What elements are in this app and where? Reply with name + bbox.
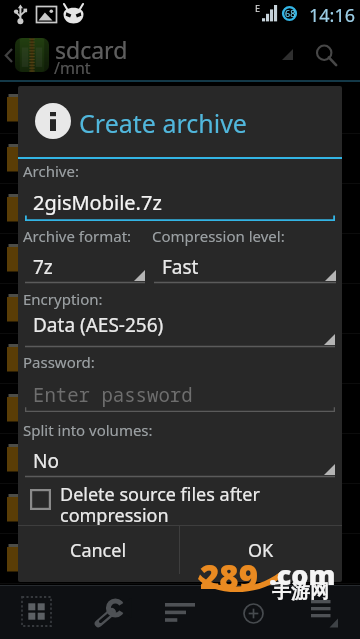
staticText: Podcasts <box>44 548 111 570</box>
button[interactable]: Tools <box>86 595 132 633</box>
staticText: Books <box>44 198 90 220</box>
staticText: Movies <box>44 448 97 470</box>
button[interactable]: Menu <box>300 594 348 634</box>
button[interactable]: Movies <box>0 434 360 483</box>
button[interactable]: More options <box>274 40 300 68</box>
button[interactable]: No <box>25 448 335 478</box>
button[interactable]: Podcasts <box>0 534 360 583</box>
staticText: Enter password <box>33 382 193 408</box>
staticText: OK <box>248 538 274 563</box>
staticText: Fast <box>162 254 199 280</box>
button[interactable]: Sounds <box>0 284 360 333</box>
button[interactable]: Books <box>0 184 360 233</box>
staticText: .com <box>269 556 336 593</box>
button[interactable]: View mode <box>16 591 56 631</box>
button[interactable]: Sort <box>152 595 208 631</box>
button[interactable]: Music <box>0 484 360 533</box>
button[interactable]: OK <box>180 526 342 574</box>
button[interactable]: Alarms <box>0 134 360 183</box>
staticText: Android <box>44 98 104 120</box>
staticText: /mnt <box>54 57 91 79</box>
staticText: Compression level: <box>152 226 285 246</box>
button[interactable]: Cancel <box>18 526 179 574</box>
staticText: 7z <box>33 254 53 280</box>
button[interactable]: Search <box>306 38 346 72</box>
button[interactable]: DCIM <box>0 334 360 383</box>
button[interactable]: Add <box>232 594 274 632</box>
button[interactable]: Delete source files after compression <box>25 482 335 526</box>
staticText: DCIM <box>44 348 86 370</box>
staticText: 68 <box>285 7 296 19</box>
staticText: Music <box>44 498 88 520</box>
staticText: Create archive <box>79 106 247 140</box>
staticText: 2gisMobile.7z <box>33 189 162 216</box>
staticText: 289 <box>200 554 259 599</box>
staticText: 手游网 <box>272 580 329 604</box>
staticText: Data (AES-256) <box>33 312 164 338</box>
button[interactable]: Pictures <box>0 234 360 283</box>
staticText: Encryption: <box>23 289 103 309</box>
button[interactable]: Fast <box>154 254 336 284</box>
button[interactable]: Download <box>0 384 360 433</box>
staticText: Archive: <box>23 161 79 181</box>
staticText: Split into volumes: <box>23 420 153 440</box>
button[interactable]: Navigate up <box>0 38 16 72</box>
button[interactable]: Enter password <box>25 381 335 412</box>
staticText: sdcard <box>55 34 128 65</box>
staticText: Password: <box>23 352 95 372</box>
staticText: Cancel <box>70 538 127 563</box>
staticText: Delete source files after compression <box>60 482 342 526</box>
staticText: No <box>33 448 59 474</box>
staticText: 14:16 <box>309 3 356 28</box>
staticText: Download <box>44 398 121 420</box>
button[interactable]: Data (AES-256) <box>25 312 335 348</box>
staticText: E <box>255 2 261 14</box>
staticText: Archive format: <box>23 226 132 246</box>
staticText: Sounds <box>44 298 100 320</box>
staticText: Pictures <box>44 248 105 270</box>
button[interactable]: 7z <box>25 254 145 284</box>
button[interactable]: 2gisMobile.7z <box>25 188 335 221</box>
staticText: Alarms <box>44 148 97 170</box>
button[interactable]: Android <box>0 84 360 133</box>
